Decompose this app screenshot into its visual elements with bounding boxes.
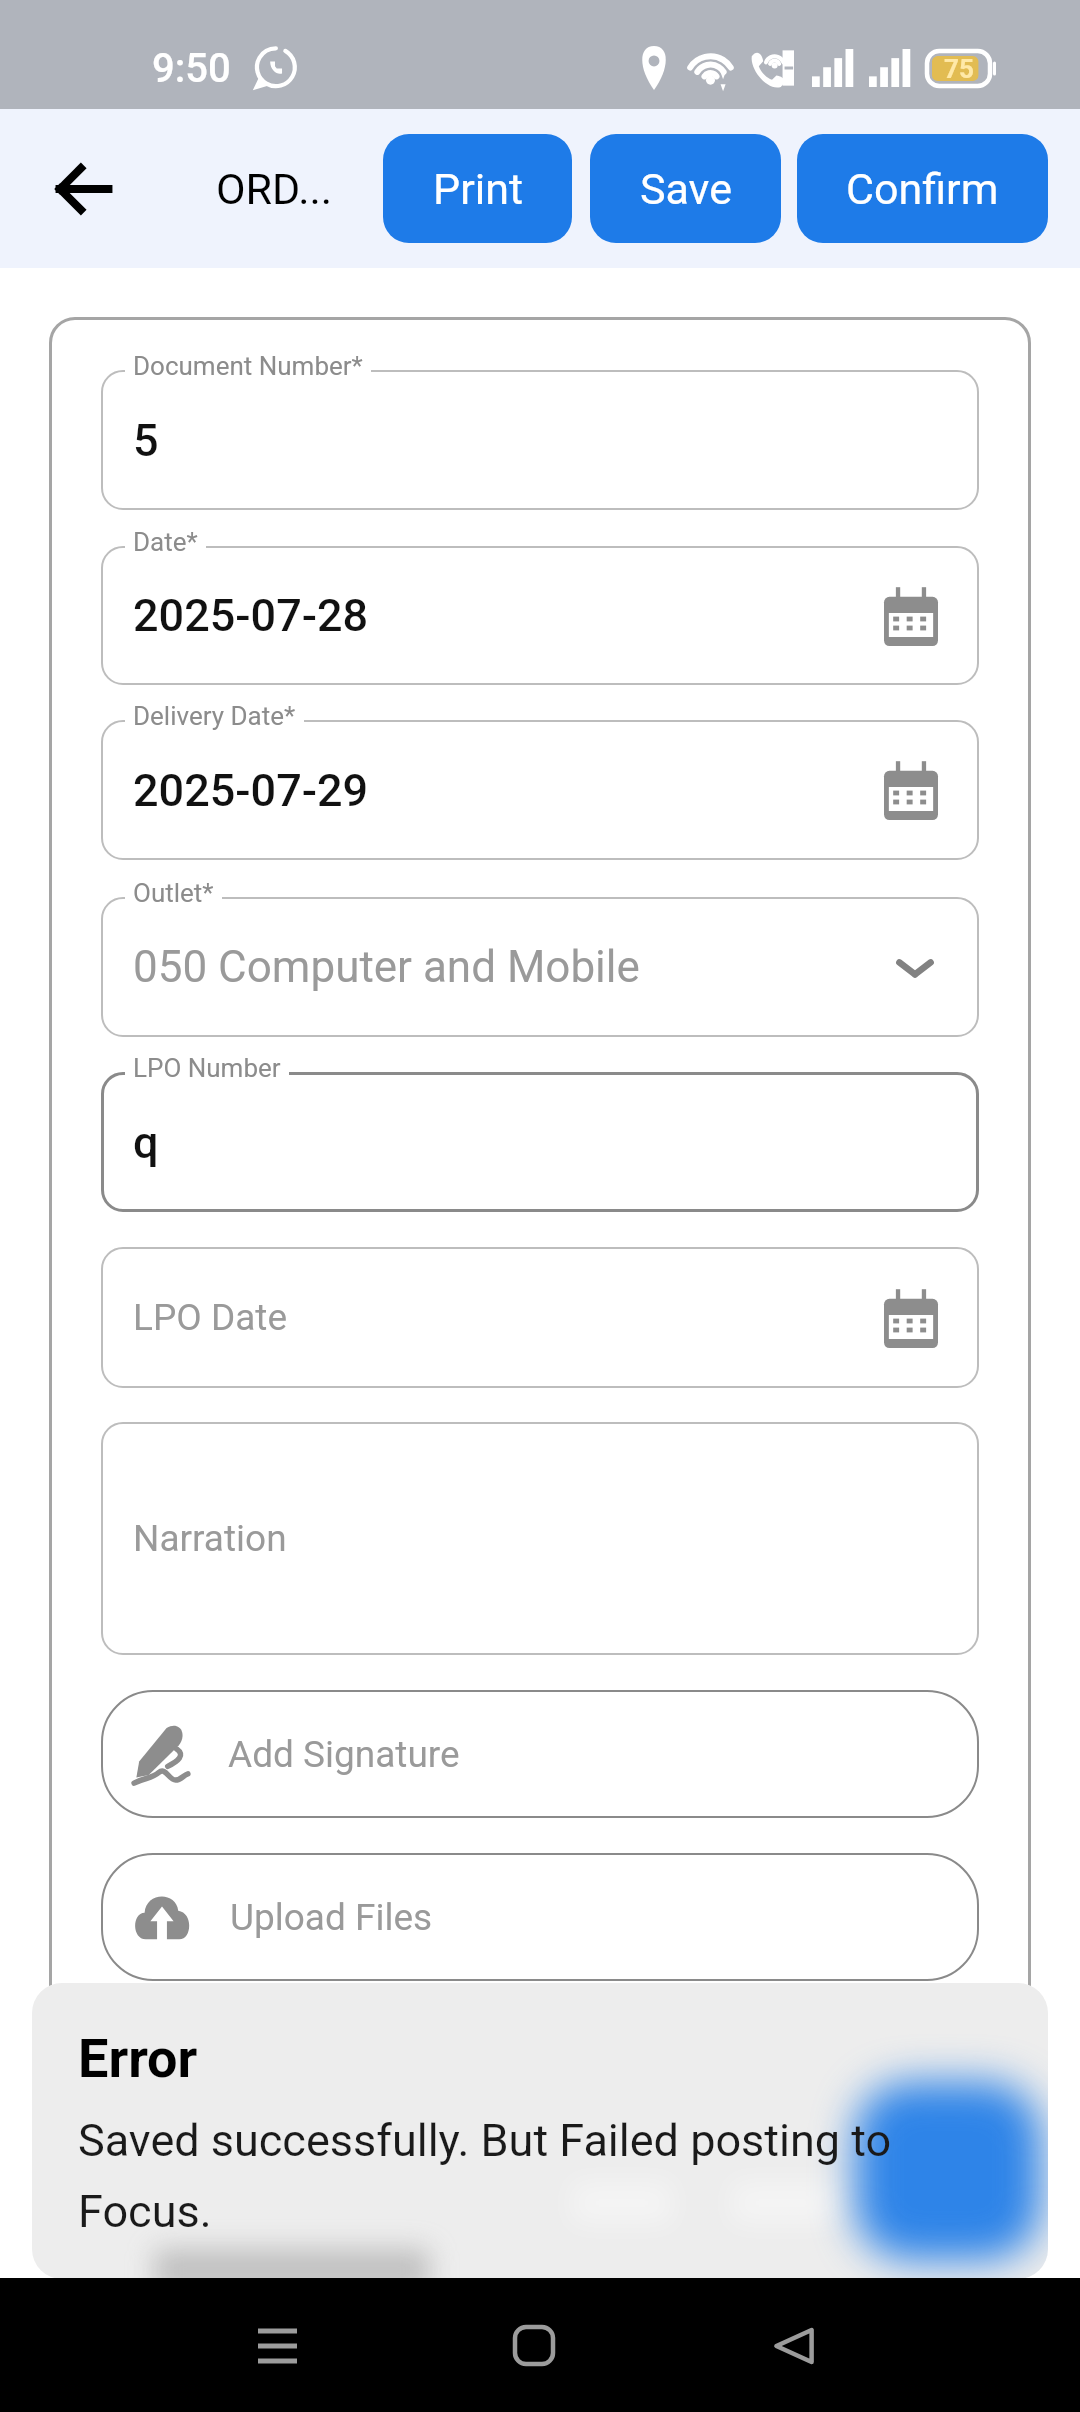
staticText: 75: [944, 54, 974, 84]
button[interactable]: Pick date: [884, 586, 938, 646]
button[interactable]: Outlet*: [101, 897, 979, 1037]
staticText: Outlet*: [133, 878, 214, 908]
button[interactable]: Date*: [101, 546, 979, 685]
staticText: Date*: [133, 527, 198, 557]
button[interactable]: Add Signature: [101, 1690, 979, 1818]
button[interactable]: Pick date: [884, 760, 938, 820]
button[interactable]: Error: [32, 1983, 1048, 2279]
staticText: Print: [433, 164, 523, 214]
staticText: 2025-07-28: [133, 589, 369, 642]
button[interactable]: Pick date: [884, 1288, 938, 1348]
button[interactable]: LPO Date: [101, 1247, 979, 1388]
staticText: Error: [78, 2027, 198, 2090]
button[interactable]: Upload Files: [101, 1853, 979, 1981]
staticText: LPO Date: [133, 1296, 288, 1339]
button[interactable]: Back: [42, 147, 126, 231]
button[interactable]: Delivery Date*: [101, 720, 979, 860]
button[interactable]: Save: [590, 134, 781, 243]
staticText: 050 Computer and Mobile: [133, 941, 640, 993]
button[interactable]: LPO Number: [101, 1072, 979, 1212]
button[interactable]: Narration: [101, 1422, 979, 1655]
staticText: 2025-07-29: [133, 764, 369, 817]
staticText: ORD...: [216, 164, 333, 214]
staticText: q: [133, 1116, 159, 1169]
staticText: Saved successfully. But Failed posting t…: [78, 2114, 892, 2238]
staticText: Delivery Date*: [133, 701, 296, 731]
staticText: Confirm: [846, 164, 999, 214]
staticText: Document Number*: [133, 351, 363, 381]
staticText: Add Signature: [228, 1733, 460, 1776]
staticText: 5: [133, 414, 159, 467]
staticText: Upload Files: [230, 1896, 433, 1939]
button[interactable]: Confirm: [797, 134, 1048, 243]
button[interactable]: Open dropdown: [892, 944, 938, 990]
staticText: 9:50: [152, 45, 231, 92]
button[interactable]: Recent apps: [240, 2308, 315, 2383]
staticText: Narration: [133, 1517, 287, 1560]
button[interactable]: Print: [383, 134, 572, 243]
button[interactable]: Home: [496, 2308, 571, 2383]
staticText: LPO Number: [133, 1053, 281, 1083]
button[interactable]: Back: [756, 2308, 831, 2383]
staticText: Save: [640, 164, 732, 214]
button[interactable]: Document Number*: [101, 370, 979, 510]
